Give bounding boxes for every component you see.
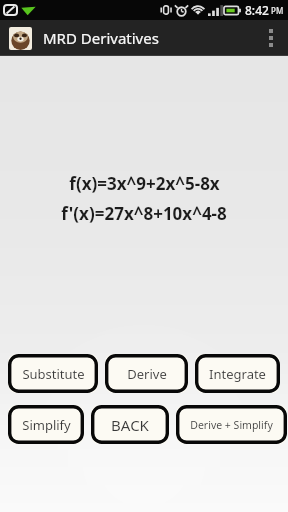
button[interactable]: More options (254, 20, 288, 56)
staticText: BACK (111, 415, 149, 435)
button[interactable]: Integrate (195, 354, 280, 393)
staticText: Integrate (209, 365, 266, 383)
staticText: f(x)=3x^9+2x^5-8x (69, 172, 220, 195)
button[interactable]: Substitute (8, 354, 98, 393)
staticText: Substitute (22, 365, 85, 383)
staticText: Simplify (22, 416, 71, 434)
staticText: PM (271, 5, 284, 16)
staticText: f'(x)=27x^8+10x^4-8 (61, 202, 227, 225)
button[interactable]: Simplify (8, 405, 84, 444)
button[interactable]: Derive + Simplify (176, 405, 287, 444)
staticText: 8:42 (245, 2, 269, 18)
staticText: MRD Derivatives (43, 28, 159, 48)
staticText: Derive + Simplify (190, 418, 273, 432)
button[interactable]: BACK (91, 405, 169, 444)
staticText: Derive (127, 365, 167, 383)
button[interactable]: Derive (105, 354, 188, 393)
